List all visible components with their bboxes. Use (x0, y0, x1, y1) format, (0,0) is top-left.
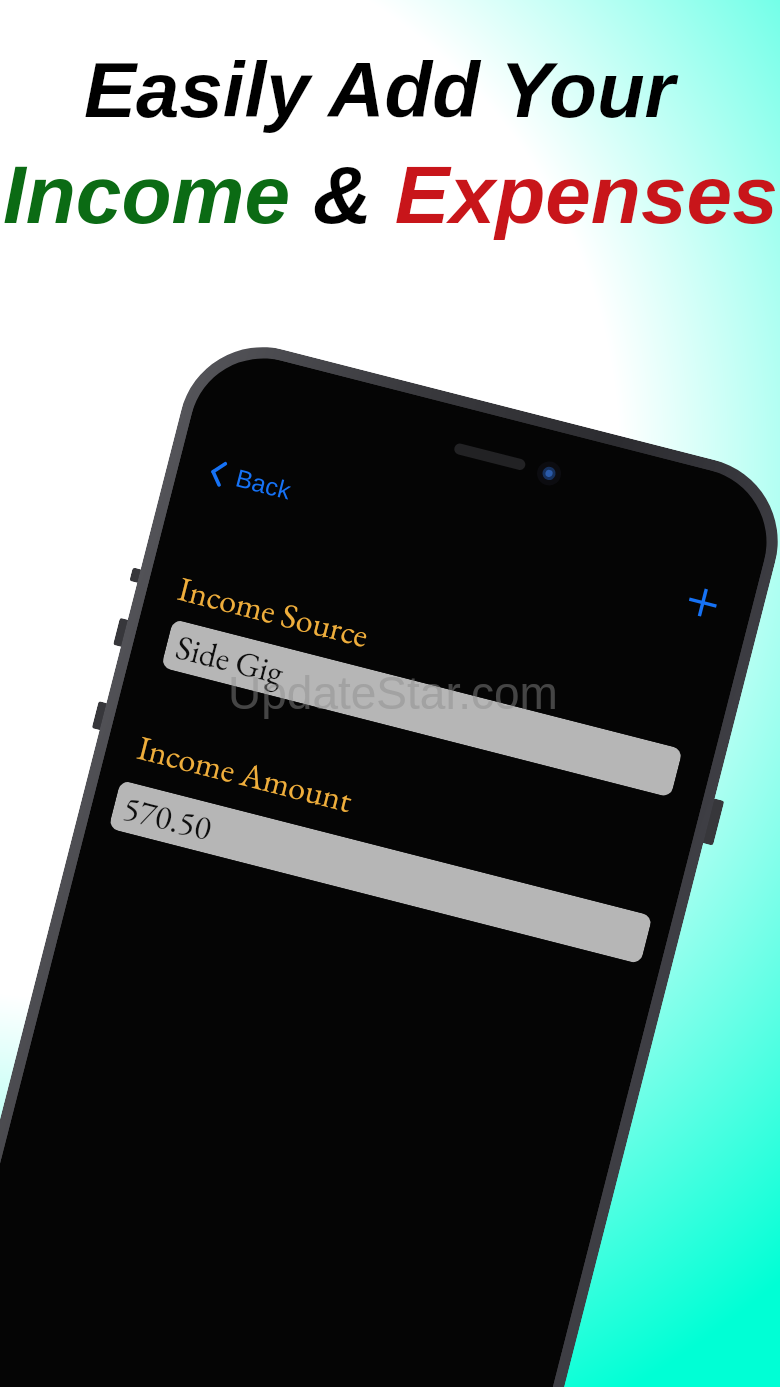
staticText: Easily Add Your (84, 46, 675, 133)
staticText: 570.50 (119, 785, 217, 850)
staticText: Income & Expenses (3, 149, 778, 241)
button[interactable]: Side Gig (161, 619, 683, 798)
staticText: Income Amount (133, 725, 357, 822)
staticText: Income Source (174, 566, 374, 657)
staticText: Back (233, 464, 294, 505)
button[interactable]: Add (674, 573, 732, 632)
staticText: Side Gig (171, 624, 289, 694)
button[interactable]: 570.50 (108, 780, 653, 964)
button[interactable]: Back (205, 447, 296, 514)
staticText: UpdateStar.com (228, 667, 558, 718)
